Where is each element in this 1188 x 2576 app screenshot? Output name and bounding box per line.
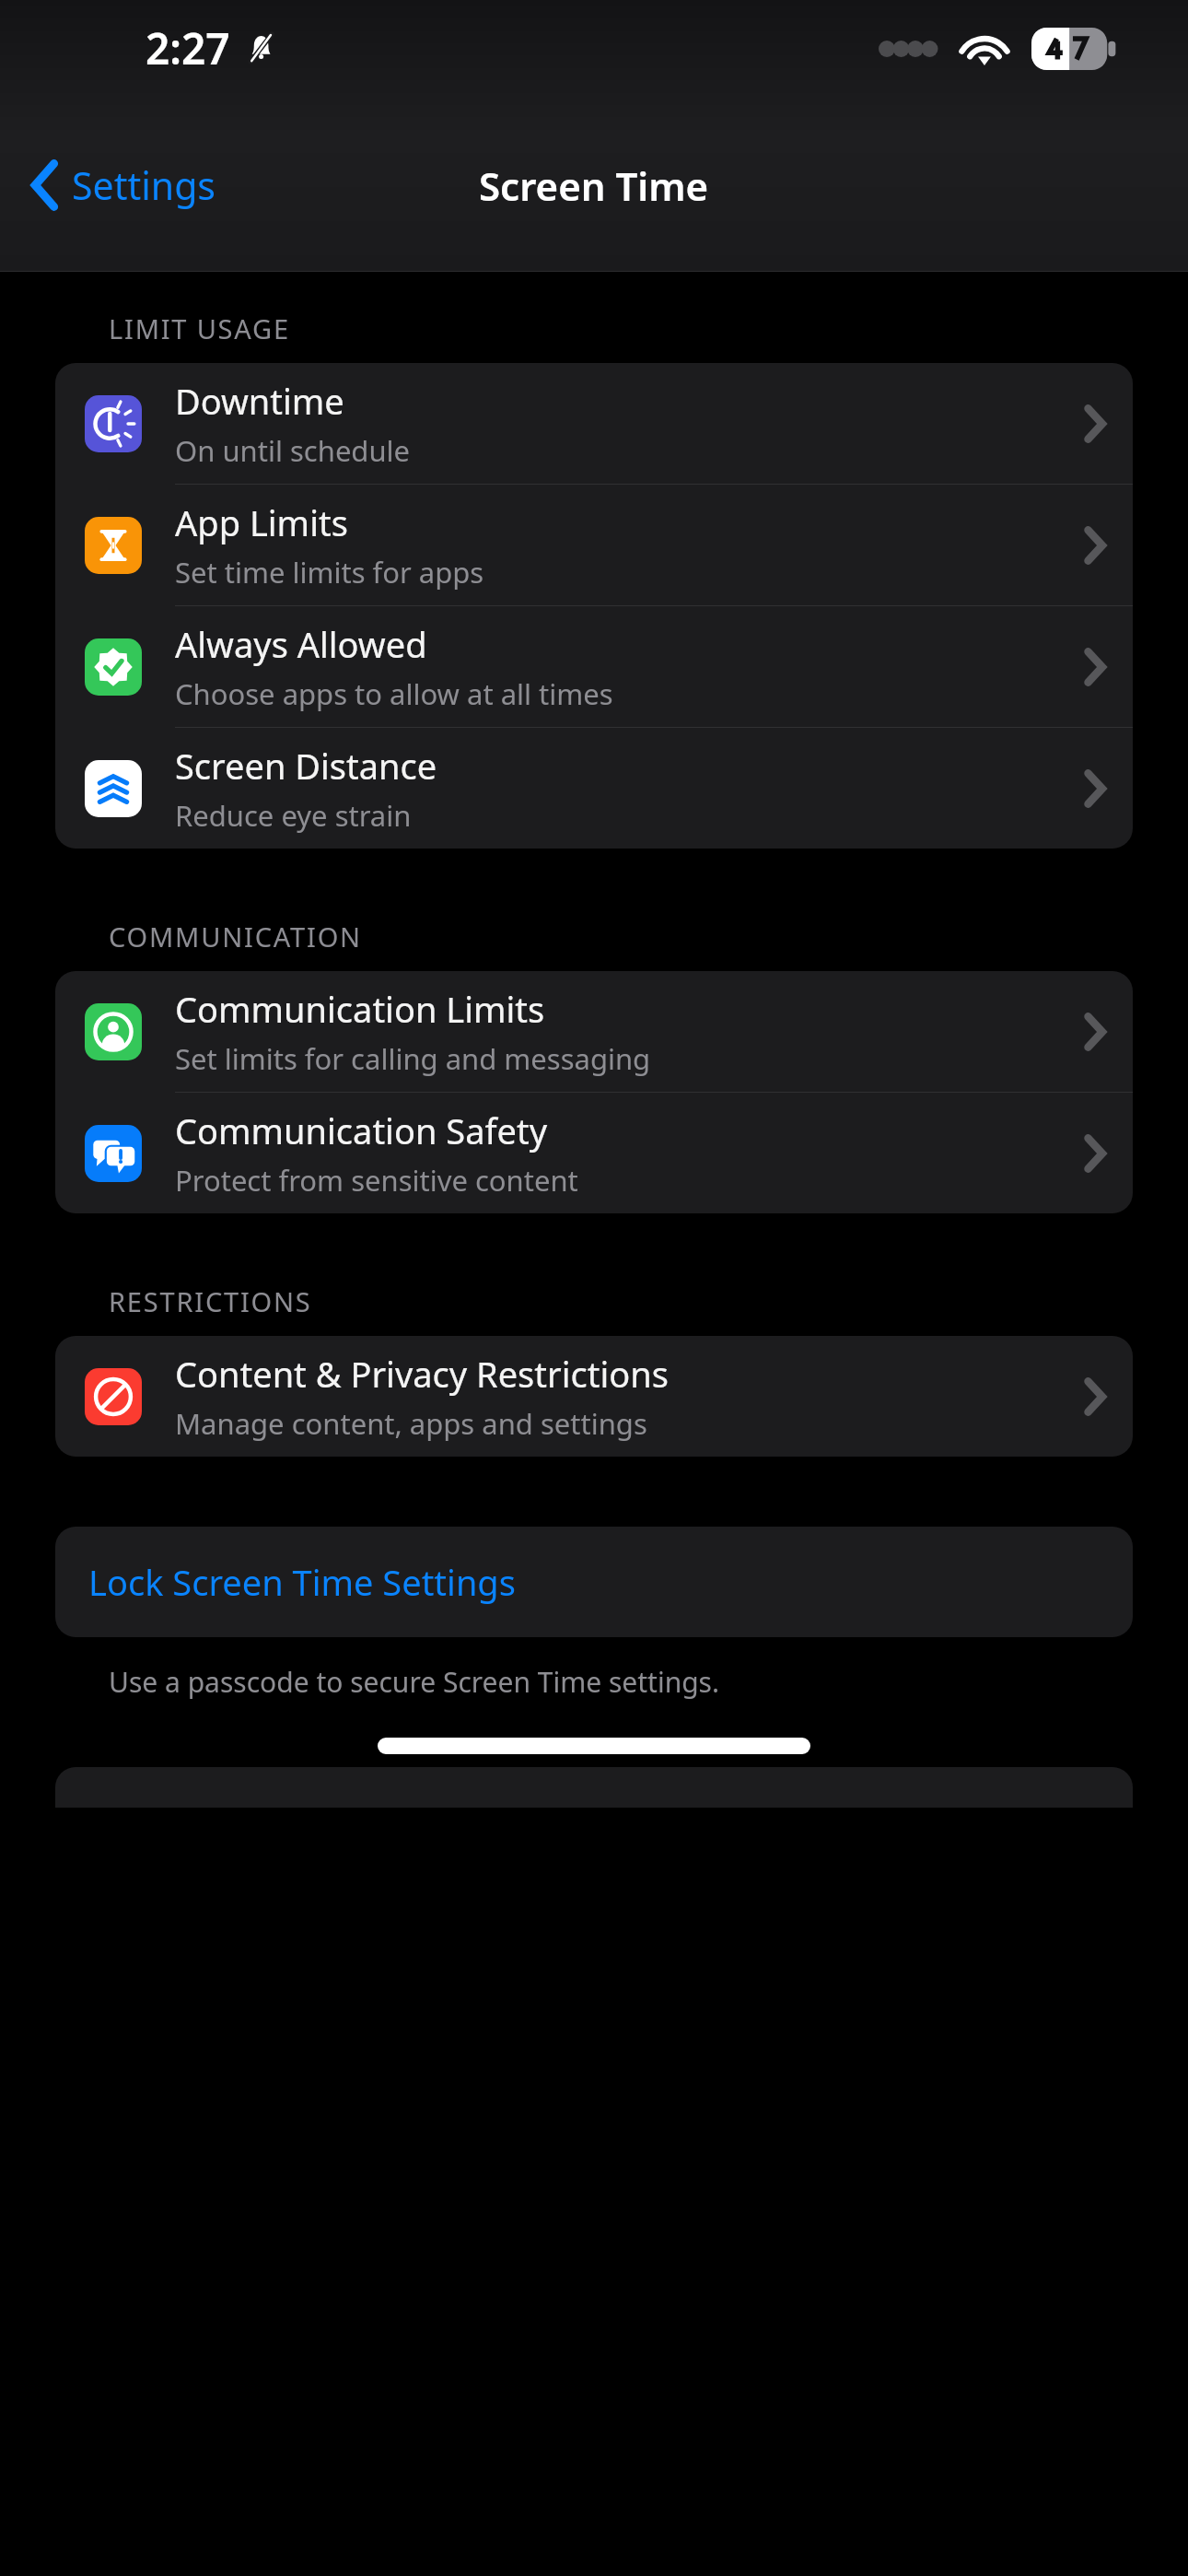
staticText: Screen Distance: [175, 742, 437, 790]
staticText: LIMIT USAGE: [109, 310, 290, 346]
other: Communication Limits: [85, 1003, 142, 1060]
staticText: 2:27: [146, 19, 230, 77]
button[interactable]: Settings: [0, 145, 239, 226]
other: Communication Safety: [85, 1125, 142, 1182]
staticText: Set limits for calling and messaging: [175, 1039, 651, 1078]
button[interactable]: Downtime: [55, 363, 1133, 485]
staticText: Lock Screen Time Settings: [88, 1558, 516, 1606]
button[interactable]: Content and Privacy Restrictions: [55, 1336, 1133, 1457]
button[interactable]: App Limits: [55, 485, 1133, 606]
button[interactable]: Communication Safety: [55, 1093, 1133, 1213]
staticText: Settings: [72, 159, 216, 211]
staticText: App Limits: [175, 498, 348, 546]
staticText: Reduce eye strain: [175, 796, 412, 835]
staticText: Use a passcode to secure Screen Time set…: [109, 1663, 720, 1701]
staticText: Communication Safety: [175, 1107, 548, 1154]
staticText: On until schedule: [175, 431, 411, 470]
other: Screen Distance: [85, 760, 142, 817]
button[interactable]: Always Allowed: [55, 606, 1133, 728]
staticText: RESTRICTIONS: [109, 1283, 312, 1319]
staticText: Communication Limits: [175, 985, 545, 1033]
button[interactable]: Communication Limits: [55, 971, 1133, 1093]
staticText: Protect from sensitive content: [175, 1161, 578, 1200]
staticText: Downtime: [175, 377, 344, 425]
other: App Limits: [85, 517, 142, 574]
staticText: Always Allowed: [175, 620, 427, 668]
other: Content and Privacy Restrictions: [85, 1368, 142, 1425]
other: Downtime: [85, 395, 142, 452]
button[interactable]: Screen Distance: [55, 728, 1133, 849]
other: Always Allowed: [85, 638, 142, 696]
staticText: Manage content, apps and settings: [175, 1404, 647, 1443]
staticText: Content & Privacy Restrictions: [175, 1350, 669, 1398]
button[interactable]: Lock Screen Time Settings: [55, 1527, 1133, 1637]
staticText: Set time limits for apps: [175, 553, 484, 591]
staticText: Choose apps to allow at all times: [175, 674, 613, 713]
staticText: COMMUNICATION: [109, 919, 362, 954]
staticText: Screen Time: [479, 159, 709, 212]
